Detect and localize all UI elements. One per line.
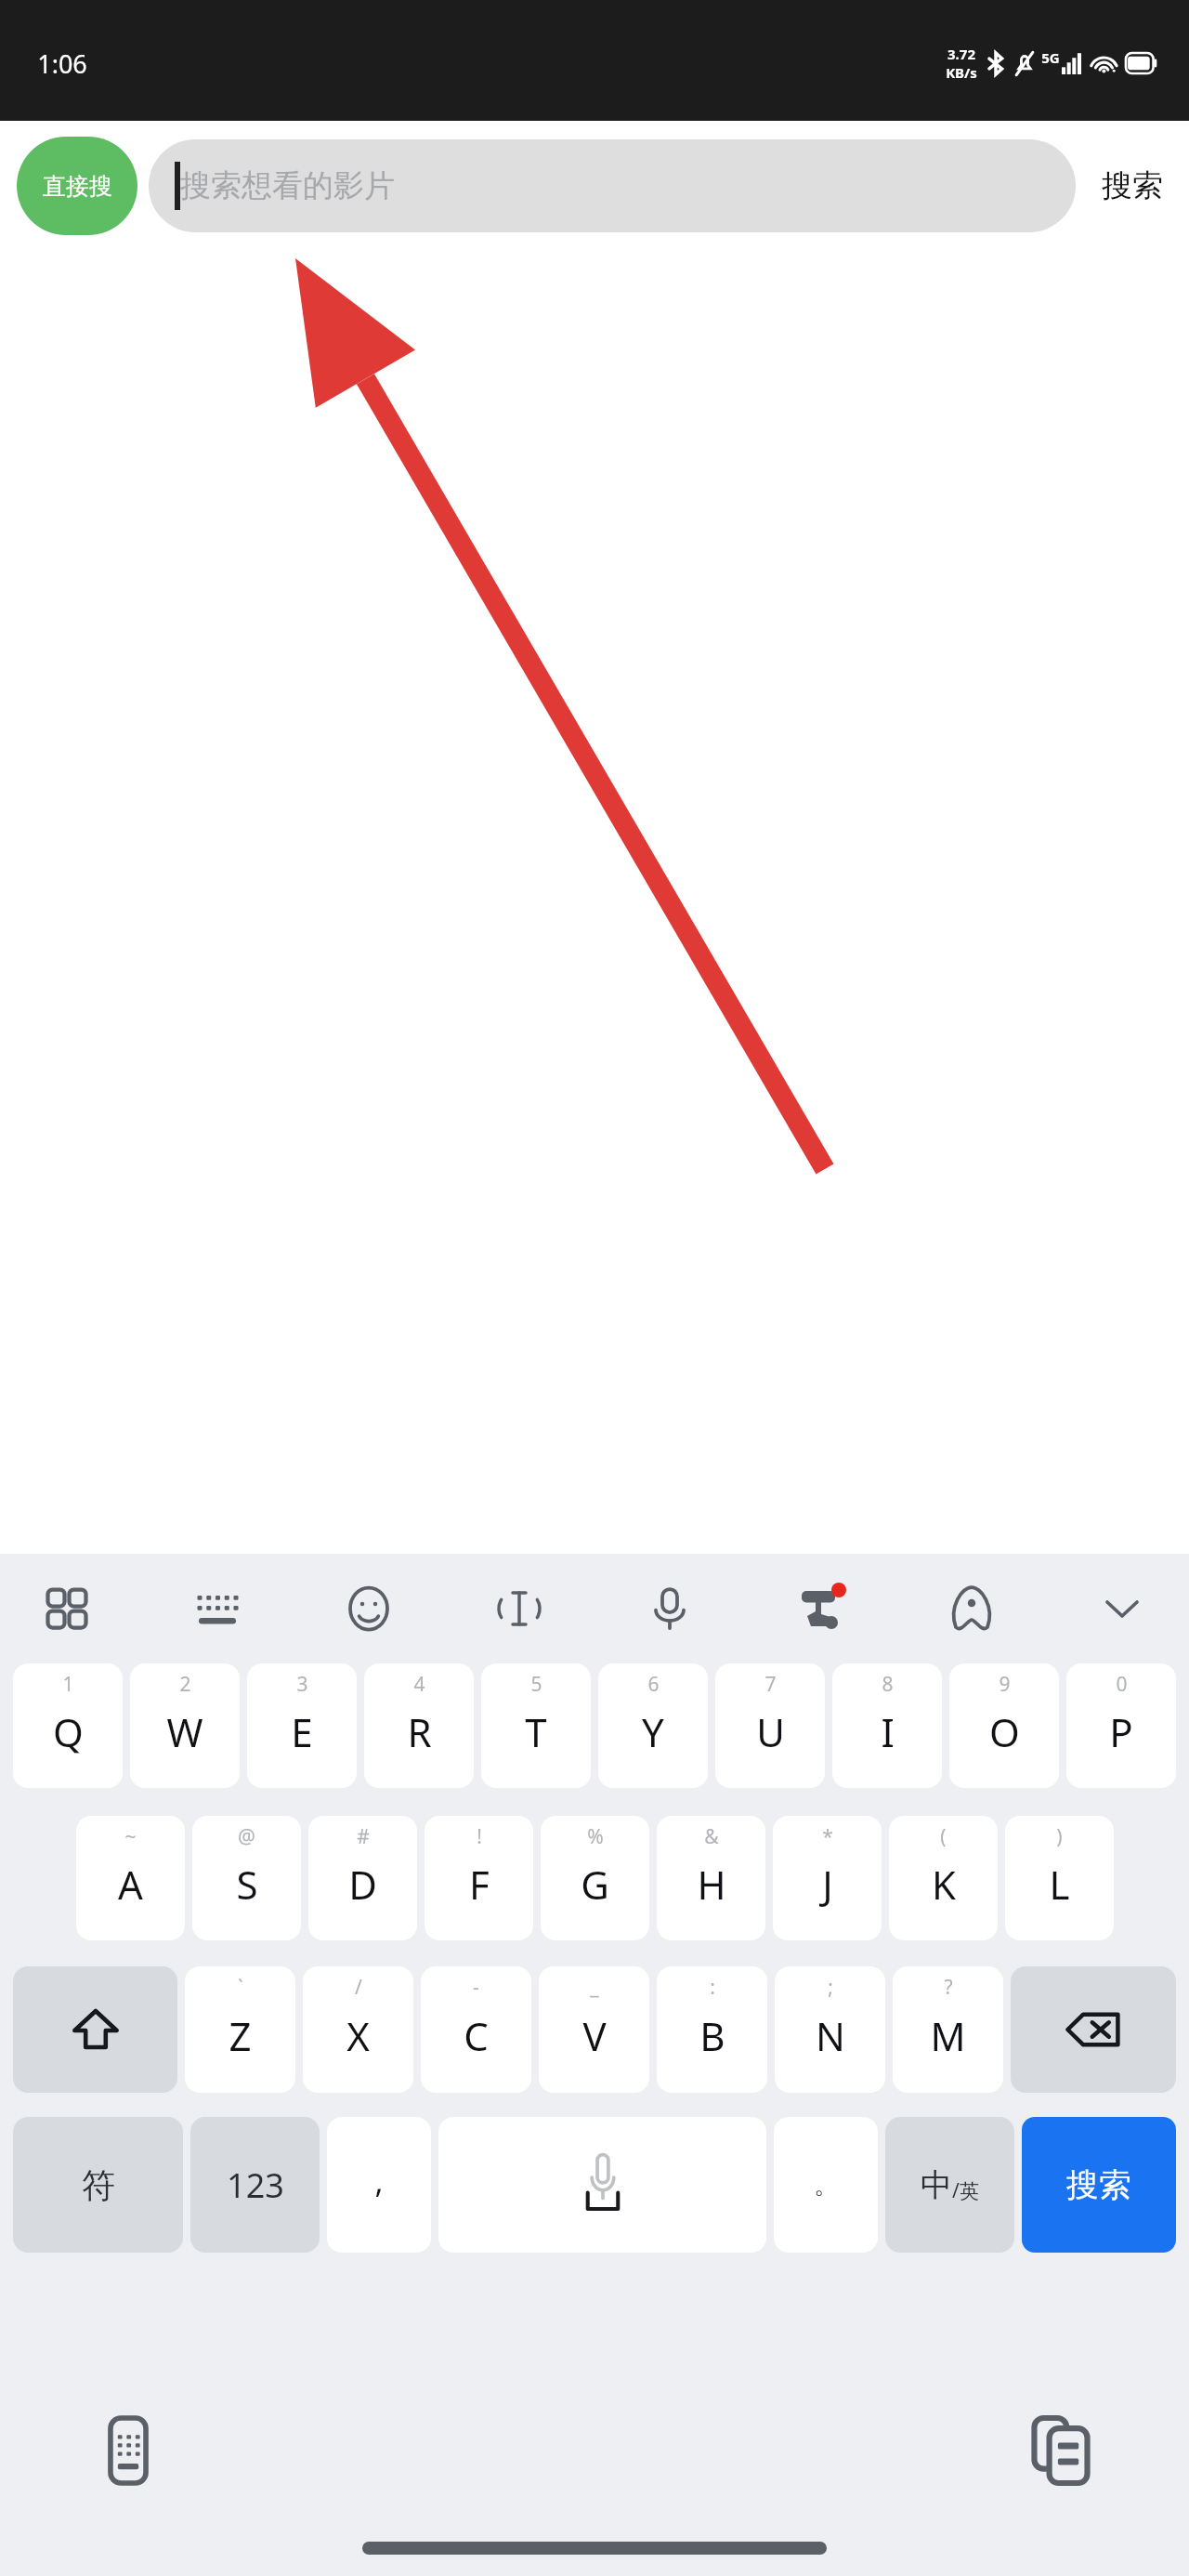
- staticText: 直接搜: [43, 172, 112, 201]
- staticText: B: [699, 2009, 725, 2062]
- button[interactable]: 4: [364, 1663, 474, 1788]
- staticText: T: [525, 1705, 547, 1758]
- button[interactable]: `: [185, 1966, 295, 2093]
- button[interactable]: 7: [715, 1663, 825, 1788]
- staticText: S: [236, 1858, 258, 1911]
- staticText: _: [590, 1974, 599, 2001]
- button[interactable]: 搜索: [1022, 2117, 1176, 2253]
- staticText: #: [357, 1823, 370, 1850]
- staticText: `: [238, 1974, 243, 2001]
- button[interactable]: Space: [438, 2117, 766, 2253]
- button[interactable]: &: [657, 1816, 765, 1940]
- button[interactable]: Voice input: [627, 1566, 712, 1651]
- staticText: K: [932, 1858, 956, 1911]
- staticText: 5: [530, 1671, 542, 1698]
- button[interactable]: Keyboard layout: [175, 1566, 260, 1651]
- staticText: 搜索: [1066, 2164, 1131, 2205]
- staticText: W: [166, 1705, 203, 1758]
- button[interactable]: 符: [13, 2117, 183, 2253]
- button[interactable]: 123: [190, 2117, 320, 2253]
- staticText: U: [756, 1705, 785, 1758]
- button[interactable]: ): [1005, 1816, 1114, 1940]
- staticText: :: [710, 1974, 715, 2001]
- staticText: 。: [814, 2170, 838, 2201]
- button[interactable]: 2: [130, 1663, 240, 1788]
- staticText: G: [581, 1858, 609, 1911]
- staticText: E: [291, 1705, 313, 1758]
- staticText: P: [1109, 1705, 1133, 1758]
- staticText: KB/s: [946, 63, 977, 82]
- staticText: 中: [921, 2165, 952, 2205]
- button[interactable]: %: [541, 1816, 649, 1940]
- button[interactable]: 搜索想看的影片: [149, 139, 1076, 232]
- button[interactable]: ~: [76, 1816, 185, 1940]
- button[interactable]: Apps: [24, 1566, 110, 1651]
- staticText: 0: [1116, 1671, 1128, 1698]
- button[interactable]: Text cursor: [477, 1566, 562, 1651]
- button[interactable]: Clipboard: [1024, 2413, 1098, 2488]
- staticText: /英: [952, 2177, 979, 2204]
- staticText: V: [582, 2009, 607, 2062]
- button[interactable]: 6: [598, 1663, 708, 1788]
- staticText: O: [989, 1705, 1020, 1758]
- button[interactable]: ,: [327, 2117, 431, 2253]
- button[interactable]: -: [421, 1966, 531, 2093]
- staticText: ?: [944, 1974, 953, 2001]
- staticText: 5G: [1041, 48, 1060, 67]
- staticText: ;: [828, 1974, 833, 2001]
- staticText: %: [587, 1823, 604, 1850]
- staticText: H: [697, 1858, 726, 1911]
- button[interactable]: ?: [893, 1966, 1003, 2093]
- button[interactable]: !: [425, 1816, 533, 1940]
- button[interactable]: Hide keyboard: [1079, 1566, 1165, 1651]
- staticText: /: [355, 1974, 362, 2001]
- staticText: ,: [374, 2160, 384, 2202]
- button[interactable]: /: [303, 1966, 413, 2093]
- button[interactable]: 搜索: [1096, 157, 1169, 215]
- staticText: D: [348, 1858, 377, 1911]
- button[interactable]: Emoji: [326, 1566, 412, 1651]
- staticText: 1:06: [37, 46, 87, 81]
- button[interactable]: Switch keyboard: [91, 2413, 165, 2488]
- staticText: 123: [227, 2162, 284, 2208]
- staticText: *: [822, 1823, 833, 1850]
- button[interactable]: 3: [247, 1663, 357, 1788]
- button[interactable]: 直接搜: [17, 137, 137, 235]
- staticText: !: [477, 1823, 482, 1850]
- button[interactable]: Account: [929, 1566, 1014, 1651]
- staticText: X: [346, 2009, 370, 2062]
- staticText: I: [881, 1705, 895, 1758]
- button[interactable]: 8: [832, 1663, 942, 1788]
- button[interactable]: #: [308, 1816, 417, 1940]
- button[interactable]: Shift: [13, 1966, 177, 2093]
- staticText: 3: [296, 1671, 308, 1698]
- staticText: L: [1049, 1858, 1070, 1911]
- button[interactable]: :: [657, 1966, 767, 2093]
- staticText: C: [464, 2009, 489, 2062]
- button[interactable]: (: [889, 1816, 998, 1940]
- button[interactable]: 中: [885, 2117, 1014, 2253]
- staticText: -: [473, 1974, 479, 2001]
- button[interactable]: Backspace: [1011, 1966, 1176, 2093]
- staticText: 符: [82, 2164, 115, 2206]
- staticText: @: [238, 1823, 255, 1850]
- button[interactable]: 0: [1066, 1663, 1176, 1788]
- staticText: 9: [999, 1671, 1011, 1698]
- staticText: 1: [62, 1671, 74, 1698]
- button[interactable]: ;: [775, 1966, 885, 2093]
- button[interactable]: *: [773, 1816, 882, 1940]
- staticText: 搜索想看的影片: [180, 166, 395, 205]
- button[interactable]: 5: [481, 1663, 591, 1788]
- button[interactable]: Ad: [777, 1566, 863, 1651]
- button[interactable]: @: [192, 1816, 301, 1940]
- staticText: N: [816, 2009, 845, 2062]
- staticText: Y: [642, 1705, 664, 1758]
- staticText: &: [704, 1823, 719, 1850]
- staticText: R: [407, 1705, 432, 1758]
- button[interactable]: 9: [949, 1663, 1059, 1788]
- button[interactable]: _: [539, 1966, 649, 2093]
- button[interactable]: 。: [774, 2117, 878, 2253]
- staticText: 7: [764, 1671, 777, 1698]
- button[interactable]: 1: [13, 1663, 123, 1788]
- staticText: 3.72: [947, 45, 975, 63]
